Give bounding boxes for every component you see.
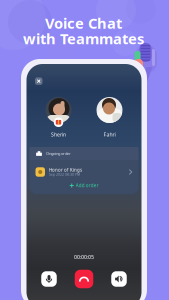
staticText: Honor of Kings bbox=[49, 167, 82, 173]
staticText: Sherin bbox=[51, 131, 66, 138]
button[interactable]: Mute bbox=[41, 271, 57, 287]
button[interactable]: Add order bbox=[35, 181, 132, 190]
button[interactable]: Speaker bbox=[111, 271, 127, 287]
button[interactable]: End call bbox=[75, 270, 93, 288]
staticText: Sep 2022 08:30 PM bbox=[49, 172, 80, 177]
staticText: Add order bbox=[76, 182, 99, 189]
staticText: with Teammates bbox=[23, 29, 144, 48]
button[interactable]: Collapse bbox=[35, 77, 42, 85]
staticText: 00:00:05 bbox=[74, 253, 94, 261]
staticText: Fahri bbox=[103, 131, 115, 138]
staticText: Voice Chat bbox=[45, 13, 122, 33]
staticText: Ongoing order bbox=[46, 151, 71, 156]
